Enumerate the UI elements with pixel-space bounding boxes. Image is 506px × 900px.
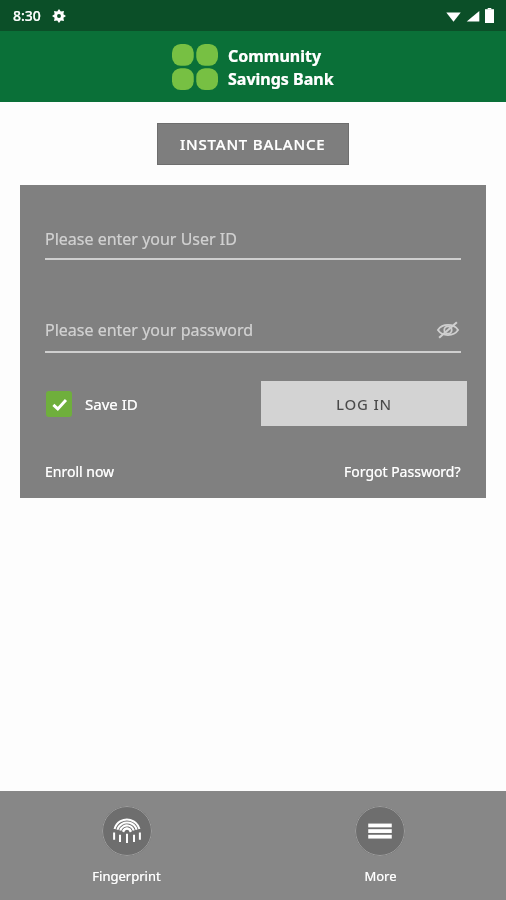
staticText: 8:30 — [13, 6, 41, 25]
button[interactable]: Show password — [435, 317, 461, 343]
other: More options — [366, 817, 394, 845]
staticText: Save ID — [85, 394, 138, 414]
staticText: Savings Bank — [228, 68, 334, 90]
button[interactable]: INSTANT BALANCE — [157, 123, 349, 165]
staticText: Please enter your password — [45, 319, 254, 341]
staticText: Community — [228, 45, 322, 67]
button[interactable]: Save ID — [46, 391, 138, 417]
staticText: LOG IN — [336, 394, 393, 414]
other: Fingerprint login — [113, 817, 141, 845]
button[interactable]: More options — [337, 800, 423, 891]
staticText: Fingerprint — [92, 867, 161, 885]
button[interactable]: Fingerprint login — [74, 800, 179, 891]
staticText: INSTANT BALANCE — [180, 134, 326, 154]
button[interactable]: Please enter your User ID — [45, 228, 461, 260]
button[interactable]: Please enter your password — [45, 317, 461, 353]
staticText: Enroll now — [45, 462, 115, 481]
staticText: Forgot Password? — [344, 462, 461, 481]
staticText: Please enter your User ID — [45, 228, 237, 250]
button[interactable]: LOG IN — [261, 381, 467, 426]
button[interactable]: Enroll now — [45, 462, 115, 481]
staticText: More — [364, 867, 397, 885]
button[interactable]: Forgot Password? — [344, 462, 461, 481]
